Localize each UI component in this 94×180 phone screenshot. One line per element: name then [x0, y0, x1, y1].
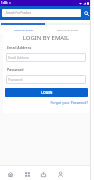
button[interactable]: Password: [6, 75, 86, 84]
button[interactable]: Profile: [55, 166, 66, 180]
staticText: LOGIN BY EMAIL: [3, 34, 89, 42]
staticText: Email Address: [8, 56, 30, 60]
button[interactable]: Search For Product: [2, 9, 81, 17]
staticText: LOGIN BY EMAIL: [14, 28, 34, 31]
staticText: Search For Product: [6, 11, 31, 15]
staticText: Email Address: [7, 45, 32, 50]
button[interactable]: Share: [38, 166, 49, 180]
button[interactable]: Home: [5, 166, 16, 180]
staticText: LOGIN: [41, 90, 53, 95]
staticText: SIGN UP BY EMAIL: [57, 28, 79, 31]
staticText: Password: [7, 67, 24, 72]
button[interactable]: LOGIN BY EMAIL: [2, 25, 46, 34]
button[interactable]: Email Address: [6, 53, 86, 62]
button[interactable]: Categories: [22, 166, 33, 180]
button[interactable]: Search: [82, 6, 91, 20]
button[interactable]: Forgot your Password?: [3, 100, 88, 105]
button[interactable]: LOGIN: [5, 88, 88, 97]
staticText: Password: [8, 78, 23, 82]
button[interactable]: SIGN UP BY EMAIL: [46, 25, 90, 34]
staticText: 1:48: [1, 1, 7, 5]
